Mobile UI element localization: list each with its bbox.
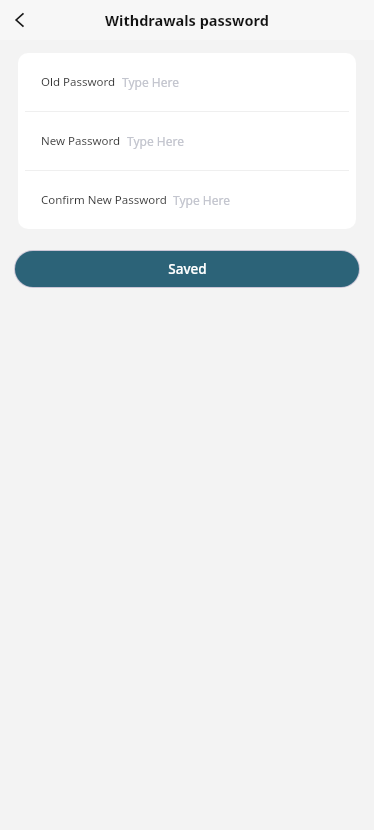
button[interactable]: Saved bbox=[15, 251, 359, 287]
button[interactable]: New Password bbox=[18, 112, 356, 170]
button[interactable]: Confirm New Password bbox=[18, 171, 356, 229]
staticText: Confirm New Password bbox=[41, 192, 167, 208]
staticText: Withdrawals password bbox=[105, 10, 269, 30]
staticText: Old Password bbox=[41, 74, 116, 90]
staticText: New Password bbox=[41, 133, 121, 149]
staticText: Saved bbox=[168, 260, 207, 278]
staticText: Type Here bbox=[122, 74, 179, 90]
button[interactable]: Back bbox=[0, 0, 40, 40]
staticText: Type Here bbox=[127, 133, 184, 149]
staticText: Type Here bbox=[173, 192, 230, 208]
button[interactable]: Old Password bbox=[18, 53, 356, 111]
